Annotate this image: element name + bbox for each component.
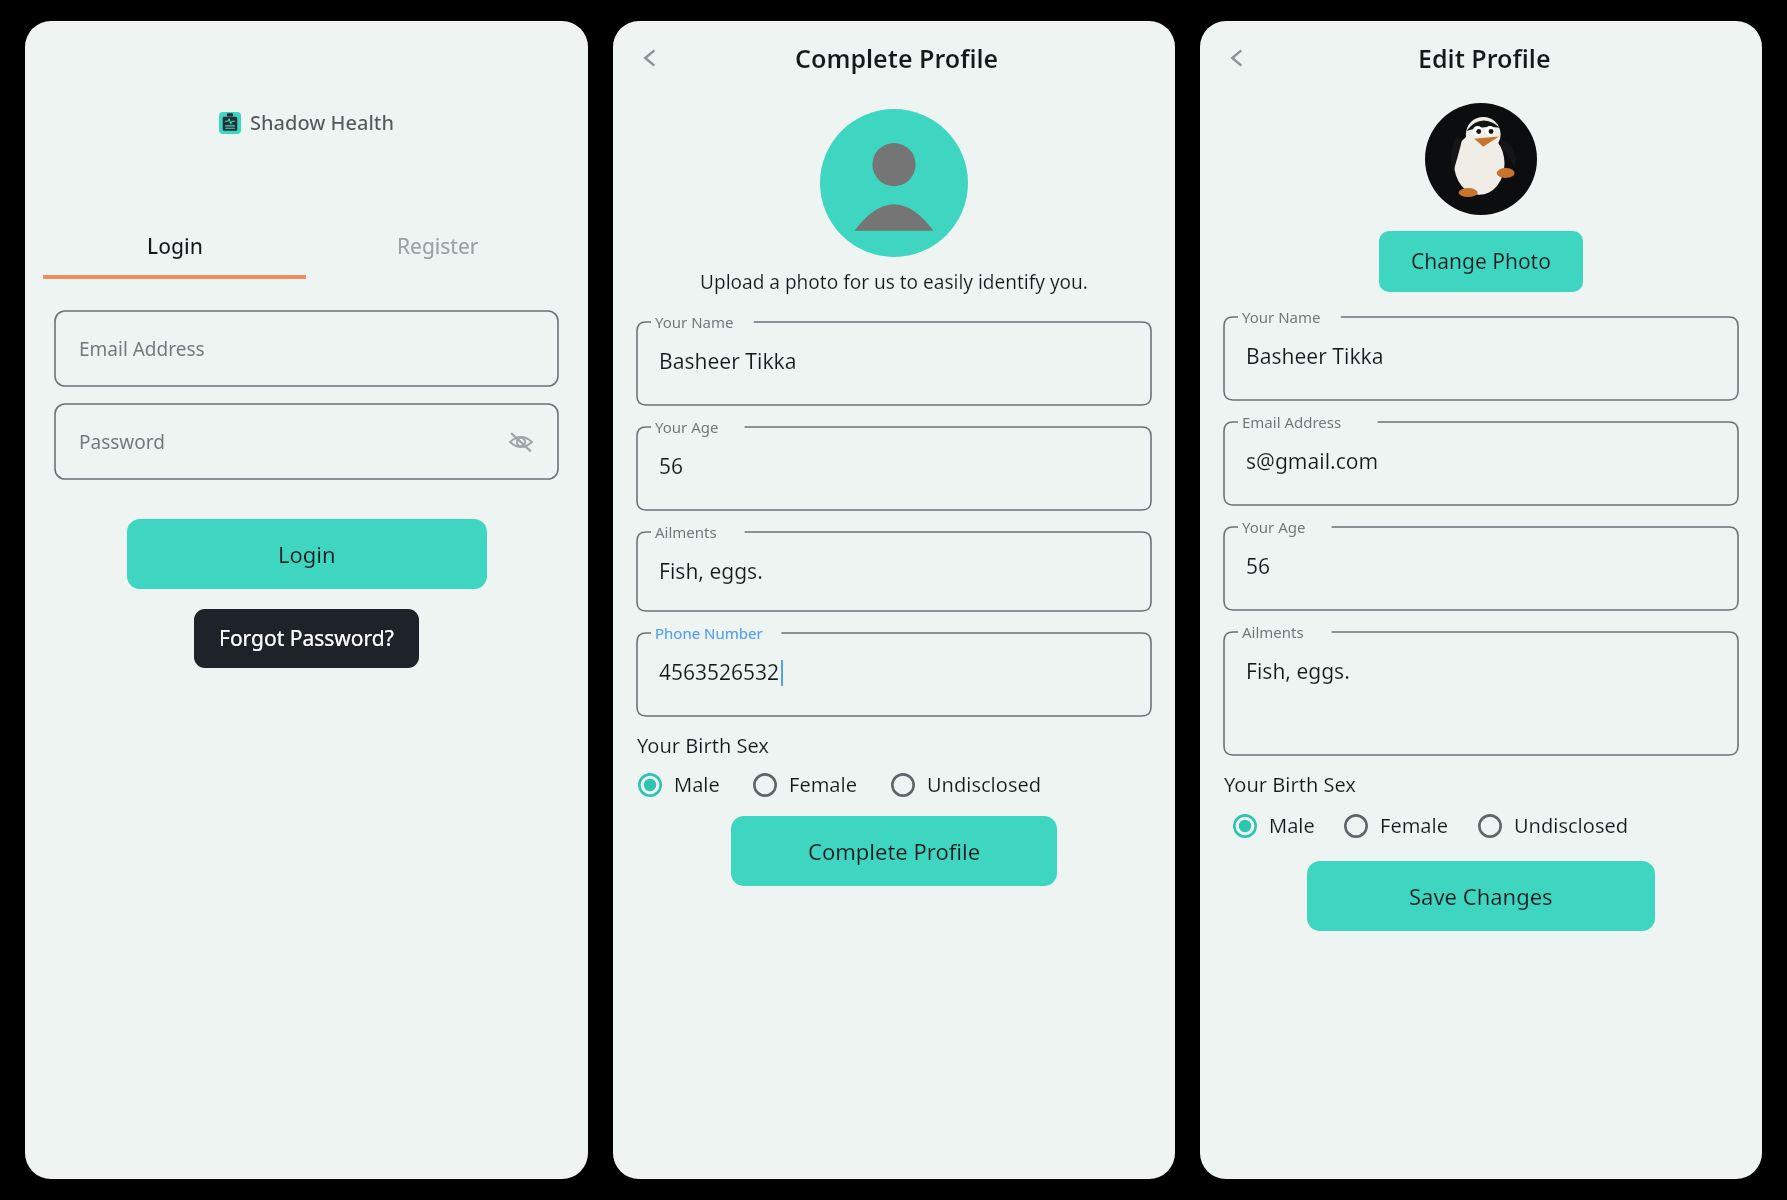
staticText: Female [789, 771, 858, 798]
staticText: Your Age [1242, 517, 1306, 537]
button[interactable]: Your Age [637, 418, 1151, 510]
button[interactable]: Back [627, 35, 673, 81]
staticText: Email Address [1242, 412, 1342, 432]
button[interactable]: Your Age [1224, 518, 1738, 610]
button[interactable]: Upload photo [820, 109, 968, 257]
button[interactable]: Login [43, 232, 306, 279]
button[interactable]: Undisclosed [890, 771, 1042, 798]
staticText: Male [1269, 812, 1315, 839]
button[interactable]: Your Name [637, 313, 1151, 405]
staticText: Ailments [1242, 622, 1304, 642]
button[interactable]: Password [55, 404, 558, 479]
staticText: 56 [659, 452, 684, 481]
staticText: Fish, eggs. [659, 557, 763, 586]
button[interactable]: Profile photo [1425, 103, 1537, 215]
staticText: Undisclosed [927, 771, 1042, 798]
button[interactable]: Ailments [637, 523, 1151, 611]
staticText: Complete Profile [808, 836, 981, 866]
staticText: Female [1380, 812, 1449, 839]
staticText: Forgot Password? [219, 624, 394, 653]
button[interactable]: Undisclosed [1477, 812, 1629, 839]
staticText: Change Photo [1411, 247, 1551, 276]
staticText: s@gmail.com [1246, 447, 1379, 476]
button[interactable]: Phone Number [637, 624, 1151, 716]
staticText: Register [397, 232, 479, 261]
staticText: Edit Profile [1418, 41, 1551, 75]
button[interactable]: Email Address [55, 311, 558, 386]
button[interactable]: Back [1214, 35, 1260, 81]
staticText: Phone Number [655, 623, 763, 643]
staticText: Undisclosed [1514, 812, 1629, 839]
staticText: Fish, eggs. [1246, 657, 1350, 686]
staticText: Shadow Health [250, 109, 395, 136]
staticText: Basheer Tikka [659, 347, 797, 376]
staticText: Login [147, 232, 203, 261]
staticText: Ailments [655, 522, 717, 542]
staticText: Complete Profile [795, 41, 999, 75]
button[interactable]: Save Changes [1307, 861, 1655, 931]
button[interactable]: Email Address [1224, 413, 1738, 505]
staticText: 4563526532 [659, 658, 780, 687]
staticText: Your Name [1242, 307, 1321, 327]
button[interactable]: Change Photo [1379, 231, 1583, 292]
button[interactable]: Forgot Password? [194, 609, 419, 668]
button[interactable]: Ailments [1224, 623, 1738, 755]
staticText: Your Age [655, 417, 719, 437]
staticText: 56 [1246, 552, 1271, 581]
button[interactable]: Register [306, 232, 570, 279]
button[interactable]: Toggle password visibility [504, 425, 538, 459]
button[interactable]: Complete Profile [731, 816, 1057, 886]
staticText: Male [674, 771, 720, 798]
staticText: Password [79, 429, 504, 455]
button[interactable]: Female [1343, 812, 1449, 839]
staticText: Save Changes [1409, 881, 1553, 911]
staticText: Upload a photo for us to easily identify… [613, 269, 1175, 295]
button[interactable]: Female [752, 771, 858, 798]
staticText: Your Name [655, 312, 734, 332]
staticText: Basheer Tikka [1246, 342, 1384, 371]
staticText: Your Birth Sex [1224, 771, 1356, 798]
staticText: Email Address [79, 336, 205, 362]
button[interactable]: Your Name [1224, 308, 1738, 400]
button[interactable]: Login [127, 519, 487, 589]
button[interactable]: Male [637, 771, 720, 798]
staticText: Your Birth Sex [637, 732, 769, 759]
button[interactable]: Male [1232, 812, 1315, 839]
staticText: Login [278, 539, 336, 569]
